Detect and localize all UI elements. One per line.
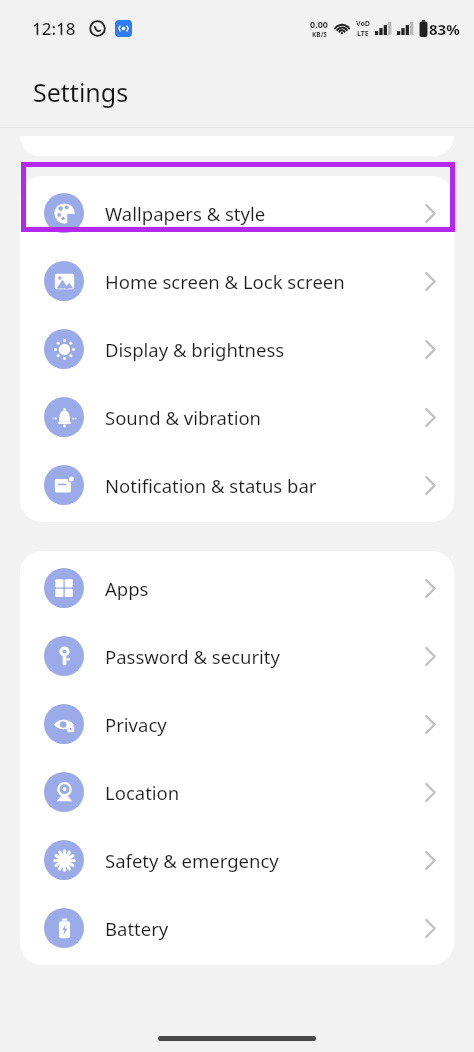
button[interactable]: Home screen & Lock screen xyxy=(20,247,454,315)
staticText: LTE xyxy=(357,29,369,39)
staticText: 0.00 xyxy=(310,18,328,30)
button[interactable]: Safety & emergency xyxy=(20,826,454,894)
staticText: 12:18 xyxy=(32,17,76,40)
staticText: KB/S xyxy=(312,30,327,39)
button[interactable]: Wallpapers & style xyxy=(20,179,454,247)
button[interactable]: Privacy xyxy=(20,690,454,758)
staticText: Privacy xyxy=(105,712,167,737)
button[interactable]: Apps xyxy=(20,554,454,622)
staticText: Wallpapers & style xyxy=(105,201,266,226)
button[interactable]: Sound & vibration xyxy=(20,383,454,451)
button[interactable]: Display & brightness xyxy=(20,315,454,383)
staticText: Location xyxy=(105,780,180,805)
staticText: VoD xyxy=(356,19,370,29)
staticText: 83% xyxy=(429,19,460,39)
staticText: Home screen & Lock screen xyxy=(105,269,345,294)
staticText: Battery xyxy=(105,916,169,941)
staticText: Notification & status bar xyxy=(105,473,317,498)
button[interactable]: Password & security xyxy=(20,622,454,690)
staticText: Safety & emergency xyxy=(105,848,279,873)
button[interactable]: Battery xyxy=(20,894,454,962)
staticText: Display & brightness xyxy=(105,337,285,362)
staticText: Password & security xyxy=(105,644,280,669)
staticText: Sound & vibration xyxy=(105,405,262,430)
button[interactable]: Location xyxy=(20,758,454,826)
staticText: Settings xyxy=(33,75,129,109)
staticText: Apps xyxy=(105,576,149,601)
button[interactable]: Notification & status bar xyxy=(20,451,454,519)
